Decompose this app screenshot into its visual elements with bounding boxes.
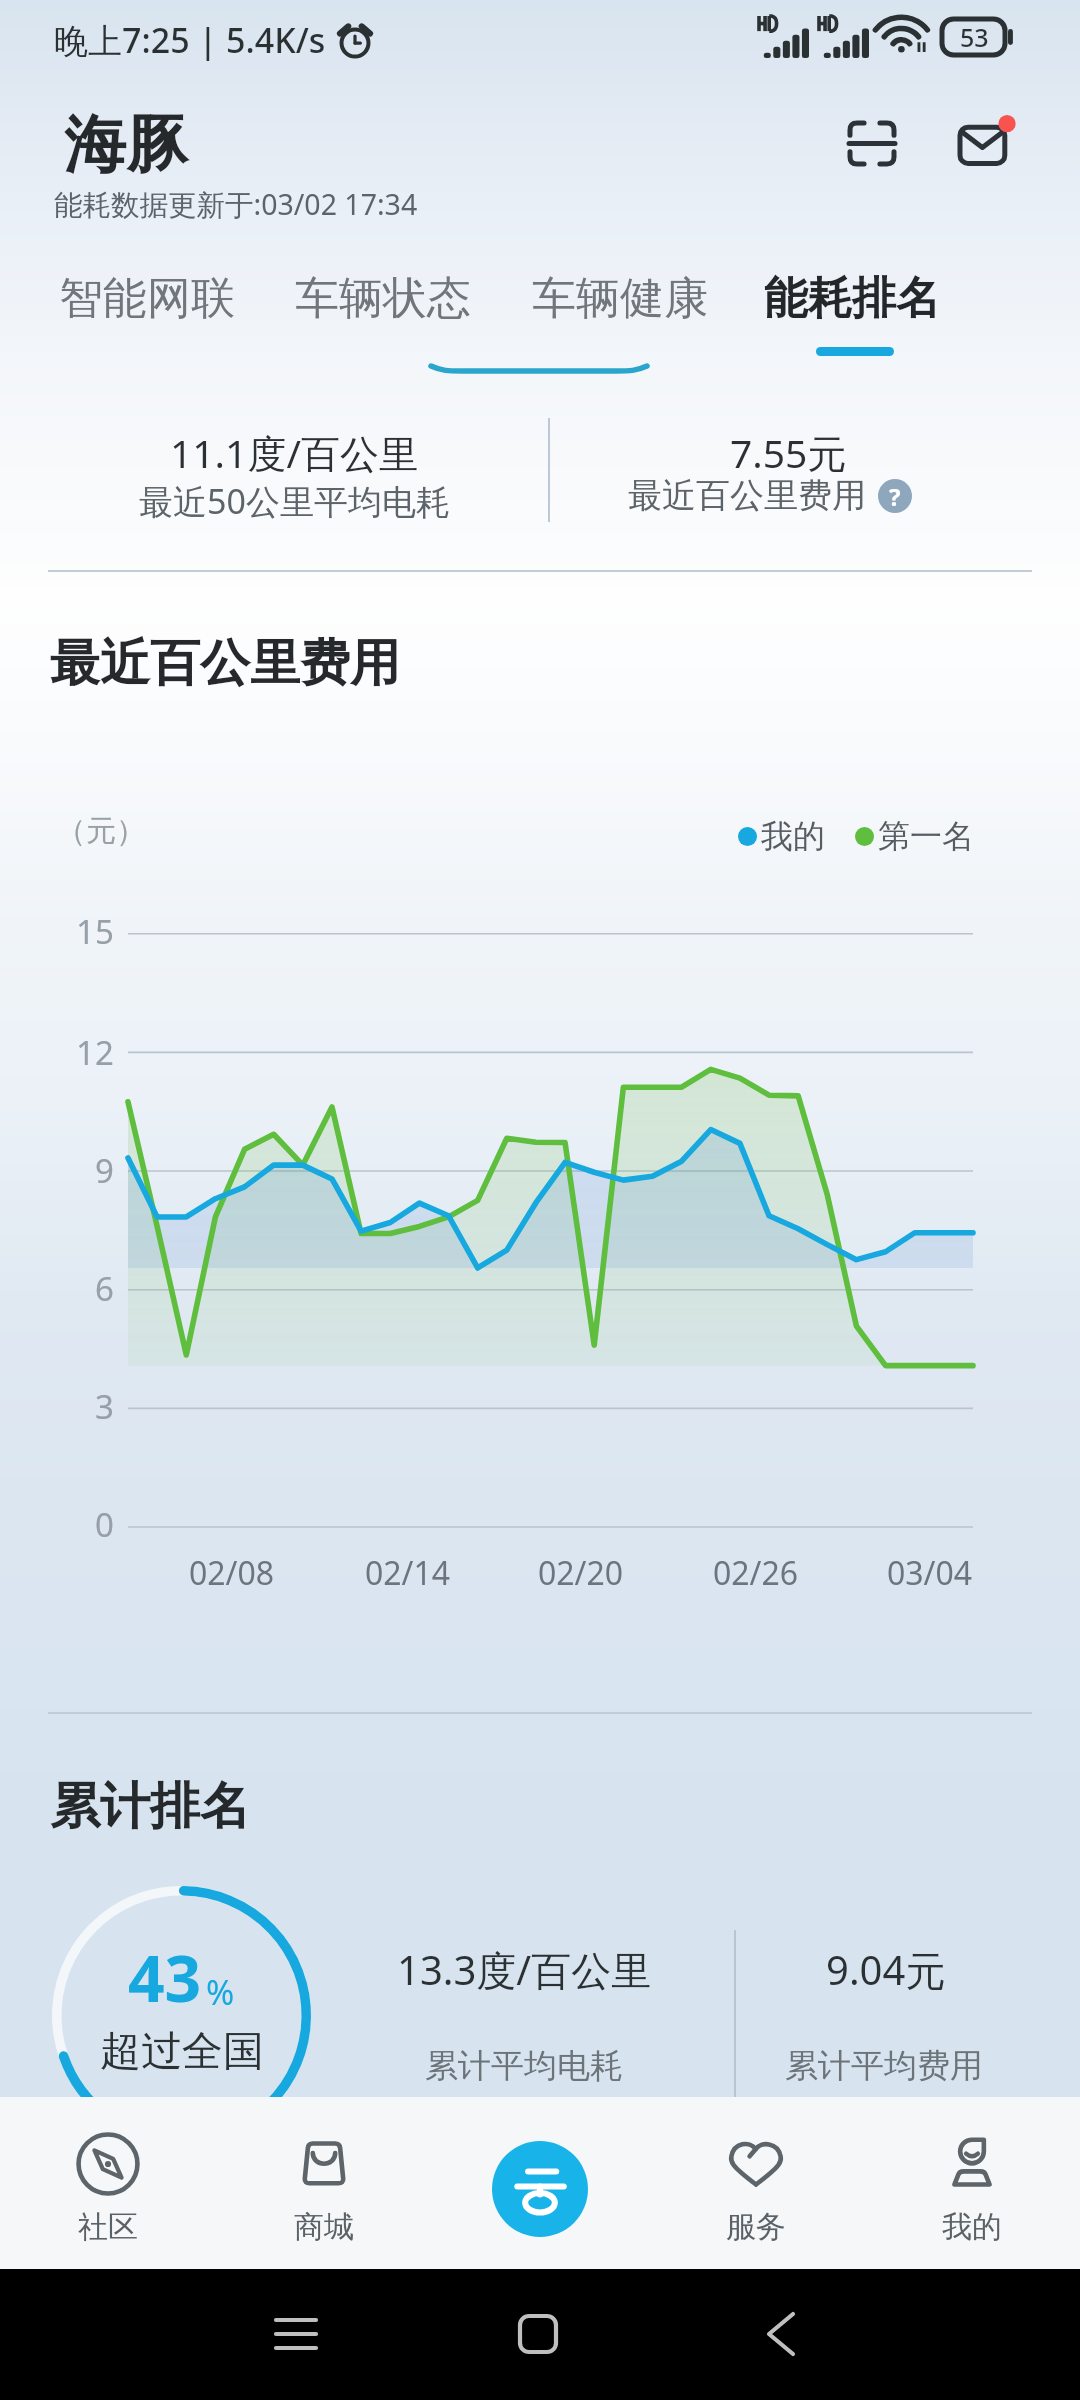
staticText: 商城 — [294, 2208, 354, 2246]
staticText: 车辆状态 — [295, 271, 471, 326]
button[interactable]: 能耗排名 — [752, 268, 952, 328]
button[interactable]: 消息 — [947, 96, 1037, 186]
staticText: 第一名 — [878, 816, 974, 856]
button[interactable]: 社区 — [0, 2097, 216, 2269]
button[interactable]: 最近50公里平均电耗 11.1度/百公里 — [24, 410, 540, 530]
staticText: 9 — [95, 1148, 114, 1193]
button[interactable]: 首页 — [432, 2097, 648, 2269]
staticText: 53 — [960, 20, 989, 54]
staticText: 13.3度/百公里 — [397, 1942, 652, 1997]
button[interactable]: 商城 — [216, 2097, 432, 2269]
button[interactable]: 车辆健康 — [520, 268, 720, 328]
button[interactable]: 返回 — [741, 2294, 821, 2374]
staticText: 智能网联 — [59, 271, 235, 326]
staticText: 7.55元 — [730, 426, 847, 479]
button[interactable]: 车辆状态 — [283, 268, 483, 328]
staticText: 03/04 — [887, 1551, 973, 1595]
staticText: 12 — [76, 1030, 114, 1075]
button[interactable]: 说明 — [878, 479, 912, 513]
button[interactable]: 43% 超过全国 — [52, 1886, 311, 2145]
staticText: 服务 — [726, 2208, 786, 2246]
staticText: 累计排名 — [50, 1775, 250, 1838]
staticText: 社区 — [78, 2208, 138, 2246]
staticText: 累计平均费用 — [785, 2045, 983, 2087]
button[interactable]: 扫一扫 — [827, 98, 917, 188]
staticText: 超过全国 — [100, 2026, 264, 2078]
staticText: 车辆健康 — [532, 271, 708, 326]
staticText: 02/08 — [189, 1551, 275, 1595]
button[interactable]: 智能网联 — [47, 268, 247, 328]
staticText: 43 — [128, 1934, 202, 2021]
staticText: 能耗排名 — [764, 271, 940, 326]
staticText: 累计平均电耗 — [425, 2045, 623, 2087]
staticText: 能耗数据更新于:03/02 17:34 — [54, 185, 418, 224]
staticText: ? — [889, 480, 901, 513]
staticText: 最近50公里平均电耗 — [139, 478, 450, 524]
staticText: 11.1度/百公里 — [170, 426, 418, 479]
staticText: 6 — [95, 1266, 114, 1311]
staticText: 0 — [95, 1502, 114, 1547]
button[interactable]: 主页 — [498, 2294, 578, 2374]
staticText: 我的 — [761, 816, 825, 856]
staticText: 我的 — [942, 2208, 1002, 2246]
staticText: 02/26 — [713, 1551, 799, 1595]
button[interactable]: 最近任务 — [256, 2294, 336, 2374]
staticText: % — [206, 1969, 235, 2015]
staticText: 最近百公里费用 — [50, 632, 400, 695]
button[interactable]: 最近百公里费用 7.55元 — [564, 410, 1056, 530]
staticText: 海豚 — [64, 106, 188, 184]
staticText: 最近百公里费用 — [628, 474, 866, 517]
staticText: 9.04元 — [826, 1942, 946, 1997]
button[interactable]: 服务 — [648, 2097, 864, 2269]
staticText: 02/14 — [365, 1551, 451, 1595]
staticText: 晚上7:25 | 5.4K/s — [54, 17, 326, 63]
staticText: 02/20 — [538, 1551, 624, 1595]
staticText: （元） — [56, 812, 146, 850]
button[interactable]: 我的 — [864, 2097, 1080, 2269]
staticText: 3 — [95, 1384, 114, 1429]
staticText: 15 — [76, 909, 114, 954]
